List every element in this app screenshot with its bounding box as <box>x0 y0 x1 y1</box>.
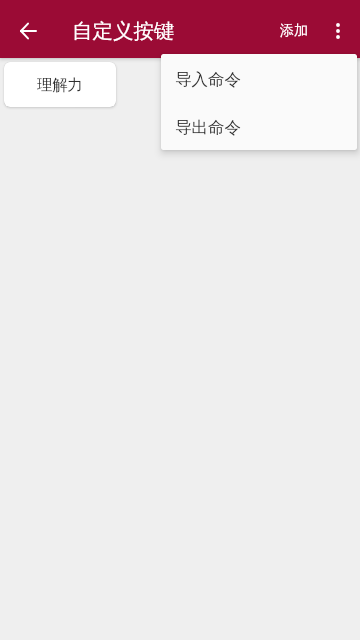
button[interactable]: 导入命令 <box>161 54 357 102</box>
staticText: 导出命令 <box>175 117 241 138</box>
button[interactable]: 添加 <box>266 0 315 61</box>
button[interactable]: Back <box>0 0 56 61</box>
staticText: 导入命令 <box>175 69 241 90</box>
button[interactable]: 导出命令 <box>161 102 357 150</box>
button[interactable]: 理解力 <box>4 62 116 107</box>
staticText: 理解力 <box>37 75 83 94</box>
staticText: 自定义按键 <box>72 18 175 44</box>
button[interactable]: More options <box>315 0 360 61</box>
staticText: 添加 <box>280 22 308 40</box>
